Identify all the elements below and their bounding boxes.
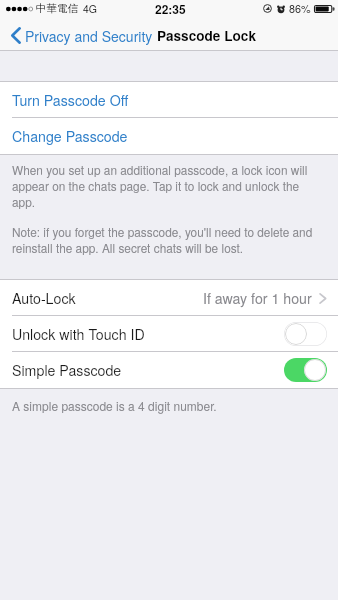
staticText: Change Passcode	[12, 126, 128, 146]
staticText: When you set up an additional passcode, …	[12, 162, 308, 210]
staticText: If away for 1 hour	[203, 288, 312, 308]
button[interactable]: Auto-Lock	[0, 280, 338, 316]
staticText: 22:35	[155, 0, 186, 17]
staticText: Simple Passcode	[12, 360, 122, 380]
staticText: Note: if you forget the passcode, you'll…	[12, 224, 313, 256]
button[interactable]: Change Passcode	[0, 118, 338, 154]
button[interactable]: Turn Passcode Off	[0, 82, 338, 118]
staticText: 4G	[83, 1, 98, 16]
button[interactable]: Off	[284, 322, 327, 346]
staticText: Turn Passcode Off	[12, 90, 129, 110]
button[interactable]: Privacy and Security	[0, 20, 156, 51]
staticText: Auto-Lock	[12, 288, 76, 308]
button[interactable]: Simple Passcode	[0, 352, 338, 388]
staticText: A simple passcode is a 4 digit number.	[12, 397, 217, 414]
staticText: 中華電信	[36, 2, 78, 15]
button[interactable]: On	[284, 358, 327, 382]
staticText: Privacy and Security	[25, 26, 153, 46]
staticText: 86%	[289, 1, 311, 16]
staticText: Passcode Lock	[157, 26, 256, 45]
button[interactable]: Unlock with Touch ID	[0, 316, 338, 352]
staticText: Unlock with Touch ID	[12, 324, 145, 344]
